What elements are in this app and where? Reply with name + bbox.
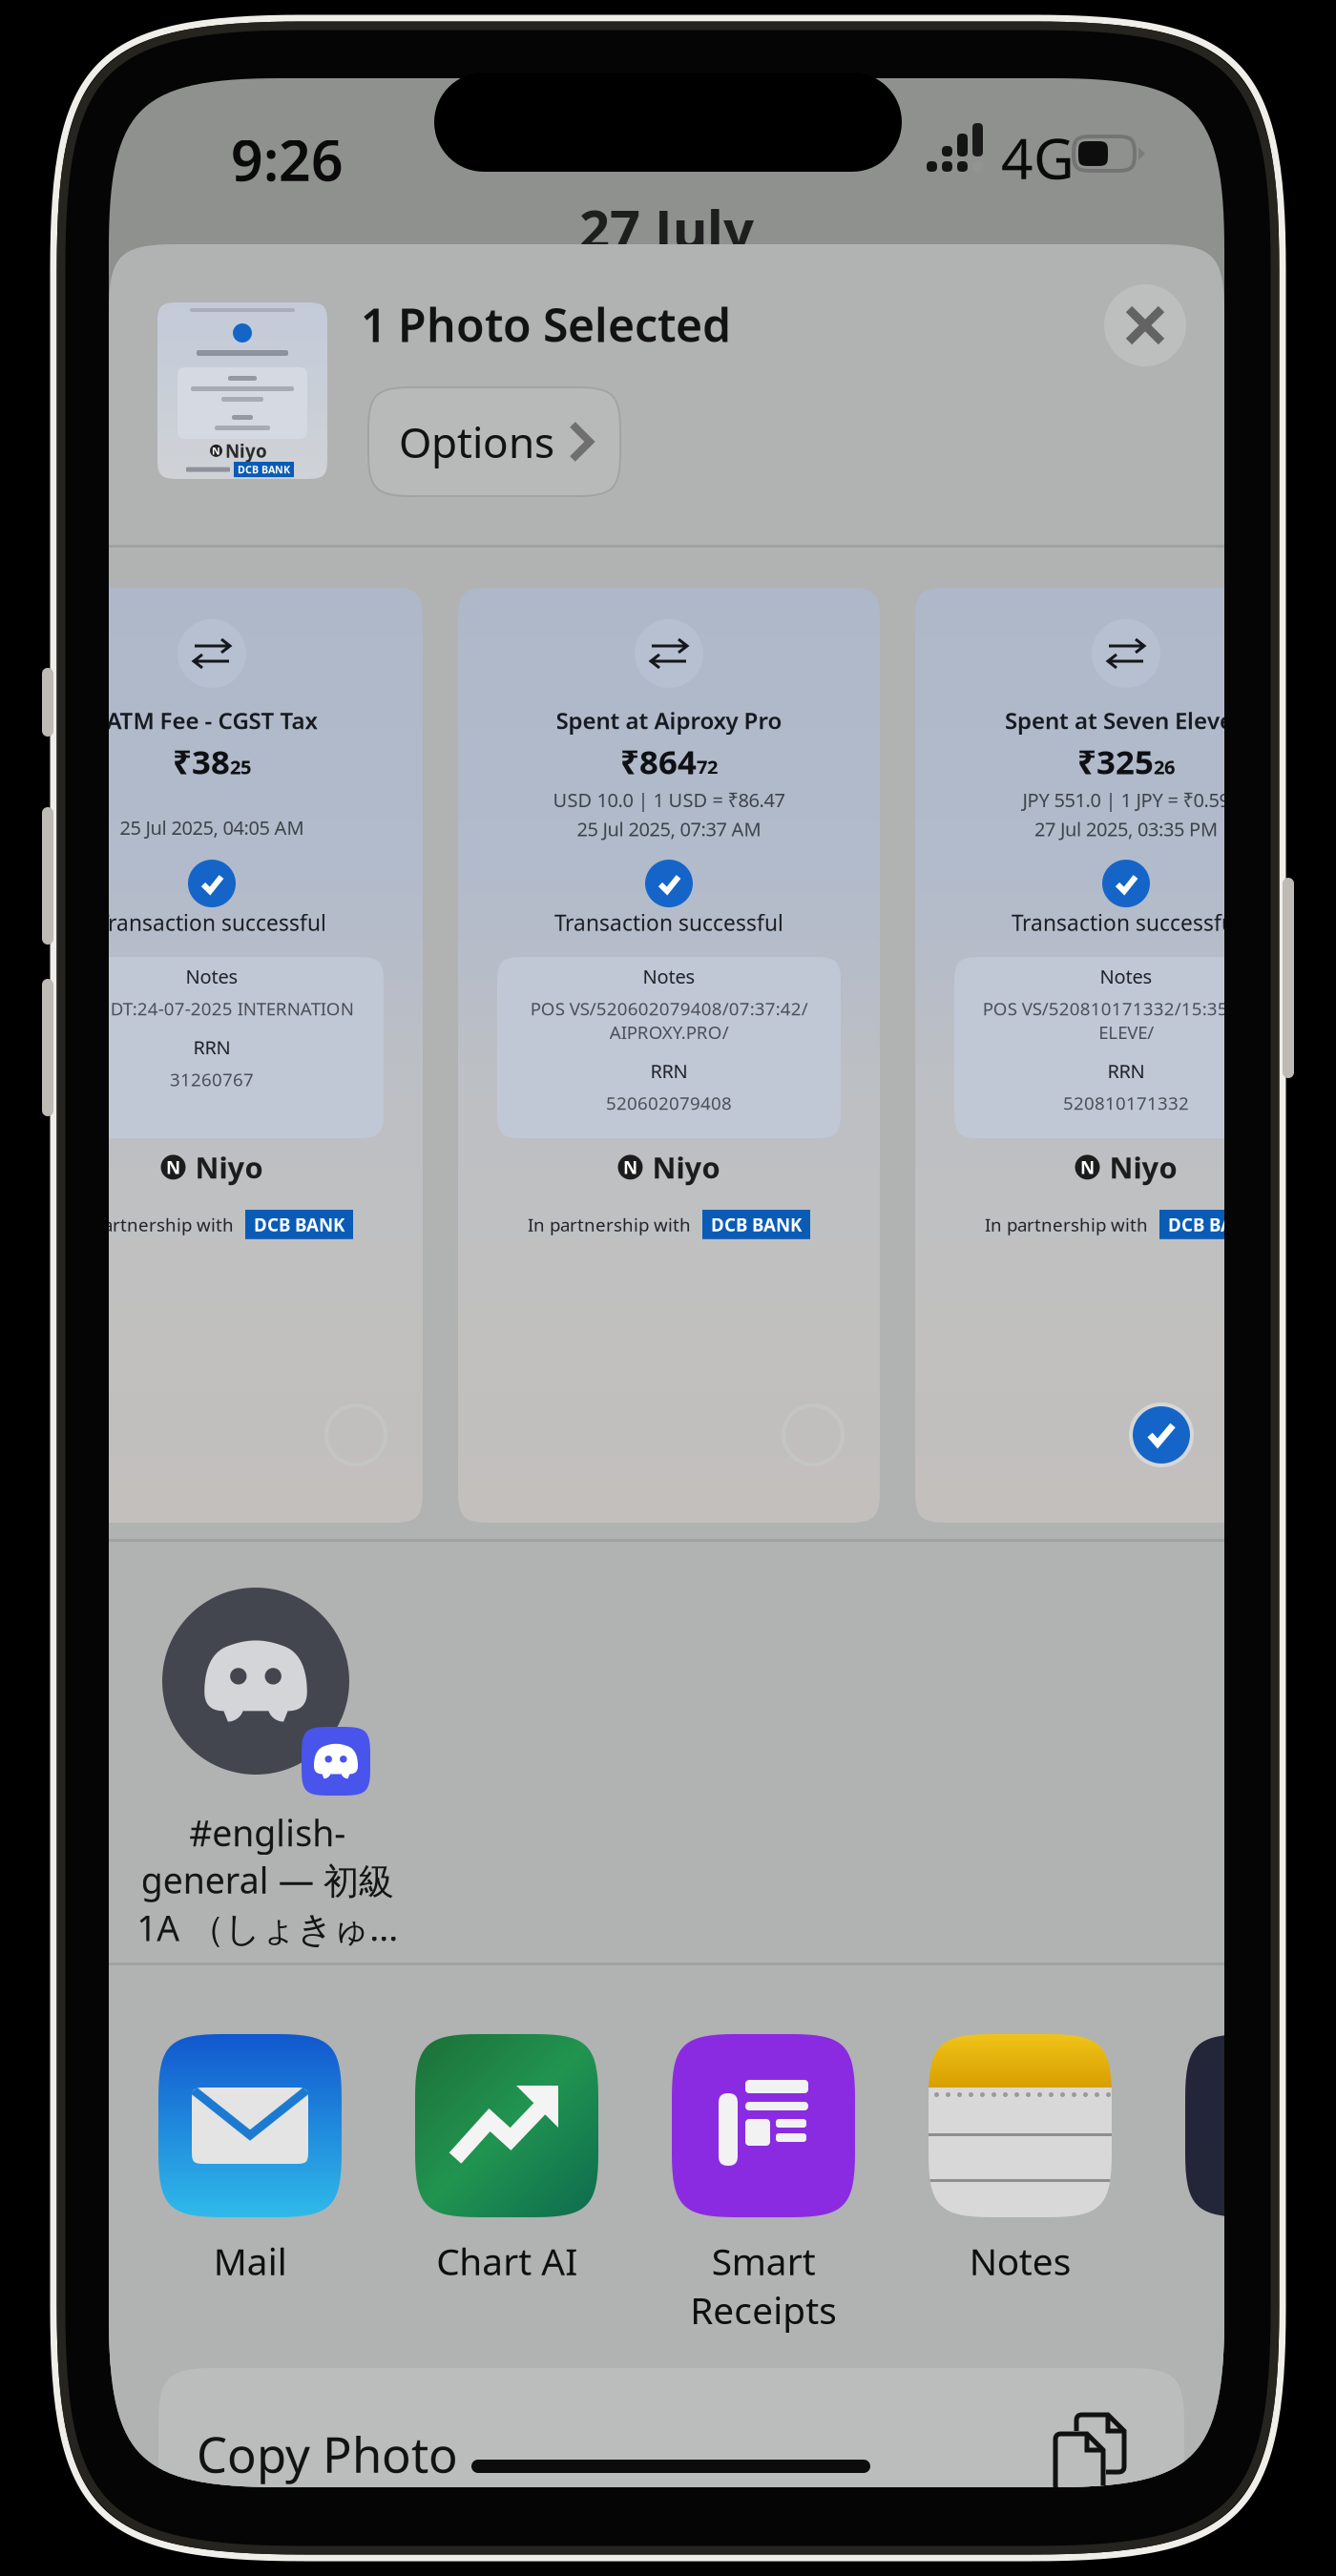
staticText: Notes (969, 2236, 1071, 2285)
staticText: 520602079408 (606, 1091, 732, 1115)
staticText: In partnership with (71, 1213, 234, 1236)
staticText: ₹3825 (173, 739, 251, 783)
staticText: 1 Photo Selected (361, 294, 731, 355)
staticText: Notes (1100, 964, 1152, 989)
staticText: 27 Jul 2025, 03:35 PM (1034, 816, 1218, 842)
button[interactable]: Selected (1127, 1401, 1196, 1469)
staticText: DCB BANK (238, 463, 290, 476)
staticText: #english- general — 初級 1A （しょきゅ... (136, 1809, 398, 1951)
staticText: DCB BANK (711, 1213, 802, 1236)
button[interactable]: More apps (1185, 2034, 1336, 2285)
staticText: J (1272, 2236, 1282, 2285)
staticText: 520810171332 (1063, 1091, 1189, 1115)
staticText: N (166, 1155, 180, 1179)
button[interactable]: Mail (158, 2034, 342, 2285)
staticText: 31260767 (170, 1068, 254, 1091)
staticText: ₹32526 (1077, 739, 1175, 783)
staticText: Niyo (1109, 1148, 1177, 1187)
staticText: ATM Fee - CGST Tax (106, 705, 317, 735)
button[interactable]: Chart AI (415, 2034, 598, 2285)
staticText: Niyo (652, 1148, 720, 1187)
staticText: POS VS/520602079408/07:37:42/ AIPROXY.PR… (530, 997, 808, 1044)
staticText: Niyo (225, 439, 267, 463)
staticText: N (1080, 1155, 1095, 1179)
staticText: USD 10.0 | 1 USD = ₹86.47 (553, 787, 785, 812)
staticText: ₹86472 (620, 739, 718, 783)
staticText: POS VS/520810171332/15:35:21/S ELEVE/ (982, 997, 1270, 1044)
staticText: Notes (643, 964, 695, 989)
staticText: In partnership with (528, 1213, 691, 1236)
button[interactable]: Options (368, 387, 620, 496)
staticText: DCB BANK (1168, 1213, 1259, 1236)
staticText: RRN (650, 1058, 688, 1084)
button[interactable]: #english- general — 初級 1A （しょきゅ... (124, 1588, 410, 1951)
staticText: Notes (186, 964, 238, 989)
staticText: N (212, 444, 220, 457)
staticText: 25 Jul 2025, 04:05 AM (120, 815, 304, 840)
button[interactable]: Copy Photo (158, 2391, 1184, 2517)
staticText: 4G (1001, 120, 1075, 195)
staticText: Options (399, 414, 554, 470)
staticText: Mail (213, 2236, 287, 2285)
staticText: Niyo (195, 1148, 263, 1187)
staticText: Transaction successful (97, 908, 326, 937)
button[interactable]: Notes (929, 2034, 1112, 2285)
button[interactable]: Smart Receipts (672, 2034, 855, 2334)
staticText: Smart Receipts (690, 2236, 837, 2334)
staticText: 27 July (579, 193, 754, 264)
staticText: N (623, 1155, 637, 1179)
staticText: RRN (1107, 1058, 1145, 1084)
staticText: Spent at Seven Eleven (1005, 705, 1247, 735)
staticText: JPY 551.0 | 1 JPY = ₹0.59 (1023, 787, 1230, 812)
staticText: Transaction successful (1012, 908, 1241, 937)
staticText: Spent at Aiproxy Pro (556, 705, 782, 735)
staticText: FOR DT:24-07-2025 INTERNATION (70, 997, 354, 1020)
staticText: Chart AI (436, 2236, 577, 2285)
staticText: DCB BANK (254, 1213, 344, 1236)
staticText: RRN (193, 1035, 230, 1060)
staticText: 25 Jul 2025, 07:37 AM (577, 816, 761, 842)
staticText: 9:26 (231, 122, 344, 196)
button[interactable]: Close (1104, 284, 1186, 366)
staticText: In partnership with (985, 1213, 1148, 1236)
staticText: Transaction successful (554, 908, 783, 937)
staticText: Copy Photo (197, 2422, 458, 2486)
